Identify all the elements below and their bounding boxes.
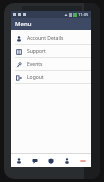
button[interactable]: Profile (59, 154, 75, 167)
button[interactable]: Messages (27, 154, 43, 167)
staticText: Support (27, 48, 46, 55)
staticText: Menu (15, 20, 32, 28)
button[interactable]: Home (11, 154, 27, 167)
button[interactable]: Events (11, 58, 91, 70)
staticText: 11:05 (78, 12, 89, 17)
staticText: Logout (27, 74, 44, 81)
staticText: Account Details (27, 35, 64, 42)
button[interactable]: Logout (11, 71, 91, 83)
button[interactable]: More (75, 154, 91, 167)
button[interactable]: Account Details (11, 32, 91, 44)
staticText: Events (27, 61, 43, 68)
button[interactable]: Secure (43, 154, 59, 167)
button[interactable]: Support (11, 45, 91, 57)
